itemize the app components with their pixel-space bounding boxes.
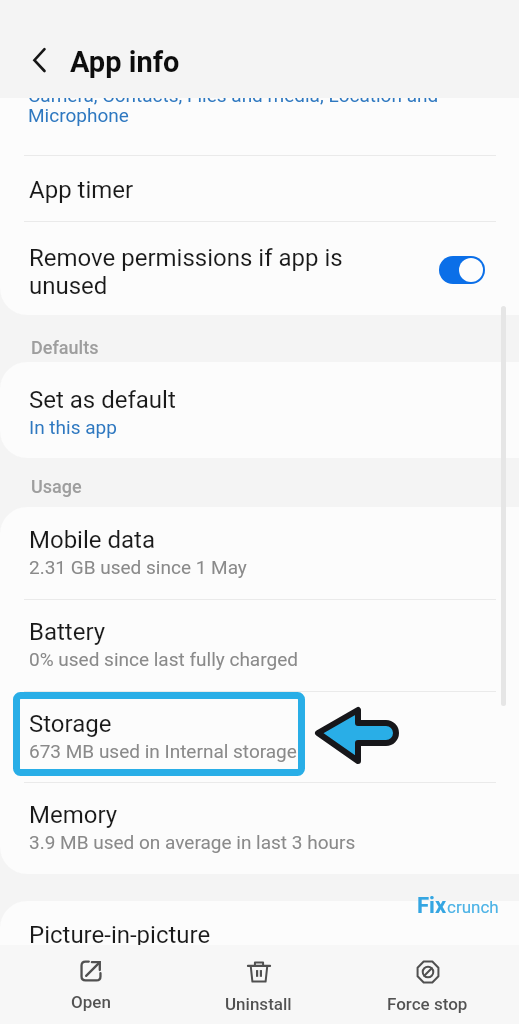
staticText: 2.31 GB used since 1 May (29, 556, 247, 578)
staticText: Open (71, 992, 111, 1012)
staticText: Defaults (31, 337, 99, 358)
staticText: Fix (417, 893, 447, 919)
button[interactable]: Camera, Contacts, Files and media, Locat… (28, 84, 439, 127)
staticText: 3.9 MB used on average in last 3 hours (29, 831, 356, 853)
staticText: Usage (31, 476, 82, 497)
staticText: crunch (447, 897, 499, 917)
button[interactable]: Force stop (342, 945, 513, 1024)
staticText: 0% used since last fully charged (29, 648, 298, 670)
staticText: App info (70, 45, 180, 79)
staticText: 673 MB used in Internal storage (29, 740, 297, 762)
button[interactable]: Remove permissions if app is unused (0, 222, 519, 315)
button[interactable]: Toggle remove permissions (439, 256, 485, 284)
button[interactable]: Picture-in-picture (0, 901, 519, 1011)
staticText: Set as default (29, 386, 176, 414)
staticText: Battery (29, 618, 106, 646)
button[interactable]: Uninstall (173, 945, 344, 1024)
button[interactable]: Memory (0, 782, 519, 874)
button[interactable]: App timer (0, 156, 519, 221)
staticText: Force stop (387, 994, 468, 1014)
staticText: Uninstall (225, 994, 292, 1014)
button[interactable]: Mobile data (0, 507, 519, 599)
staticText: Remove permissions if app is unused (29, 244, 343, 300)
staticText: Storage (29, 710, 112, 738)
staticText: Picture-in-picture (29, 921, 211, 949)
staticText: App timer (29, 176, 134, 204)
button[interactable]: Battery (0, 599, 519, 691)
staticText: Memory (29, 801, 118, 829)
button[interactable]: Navigate back (15, 36, 63, 84)
button[interactable]: Open (5, 945, 176, 1024)
button[interactable]: Set as default (0, 362, 519, 458)
button[interactable]: Storage (0, 691, 519, 783)
staticText: Mobile data (29, 526, 155, 554)
staticText: In this app (29, 416, 117, 438)
